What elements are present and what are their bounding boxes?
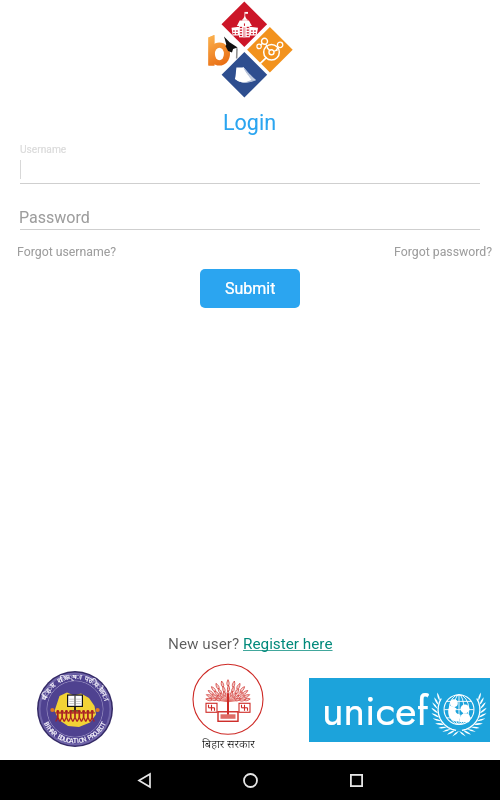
button[interactable]: Register here: [243, 635, 333, 653]
staticText: Login: [223, 110, 277, 135]
staticText: Forgot username?: [17, 245, 117, 259]
button[interactable]: Forgot username?: [17, 245, 117, 259]
staticText: unicef: [322, 681, 429, 740]
staticText: Username: [20, 144, 67, 156]
staticText: Password: [19, 208, 90, 227]
staticText: Forgot password?: [394, 245, 493, 259]
staticText: New user?: [168, 635, 243, 653]
button[interactable]: Back: [123, 760, 165, 800]
button[interactable]: Submit: [200, 269, 300, 308]
staticText: बिहार सरकार: [202, 736, 255, 750]
button[interactable]: Home: [229, 760, 271, 800]
staticText: Submit: [225, 279, 276, 298]
button[interactable]: Forgot password?: [394, 245, 493, 259]
button[interactable]: Recent apps: [335, 760, 377, 800]
staticText: Register here: [243, 635, 333, 653]
